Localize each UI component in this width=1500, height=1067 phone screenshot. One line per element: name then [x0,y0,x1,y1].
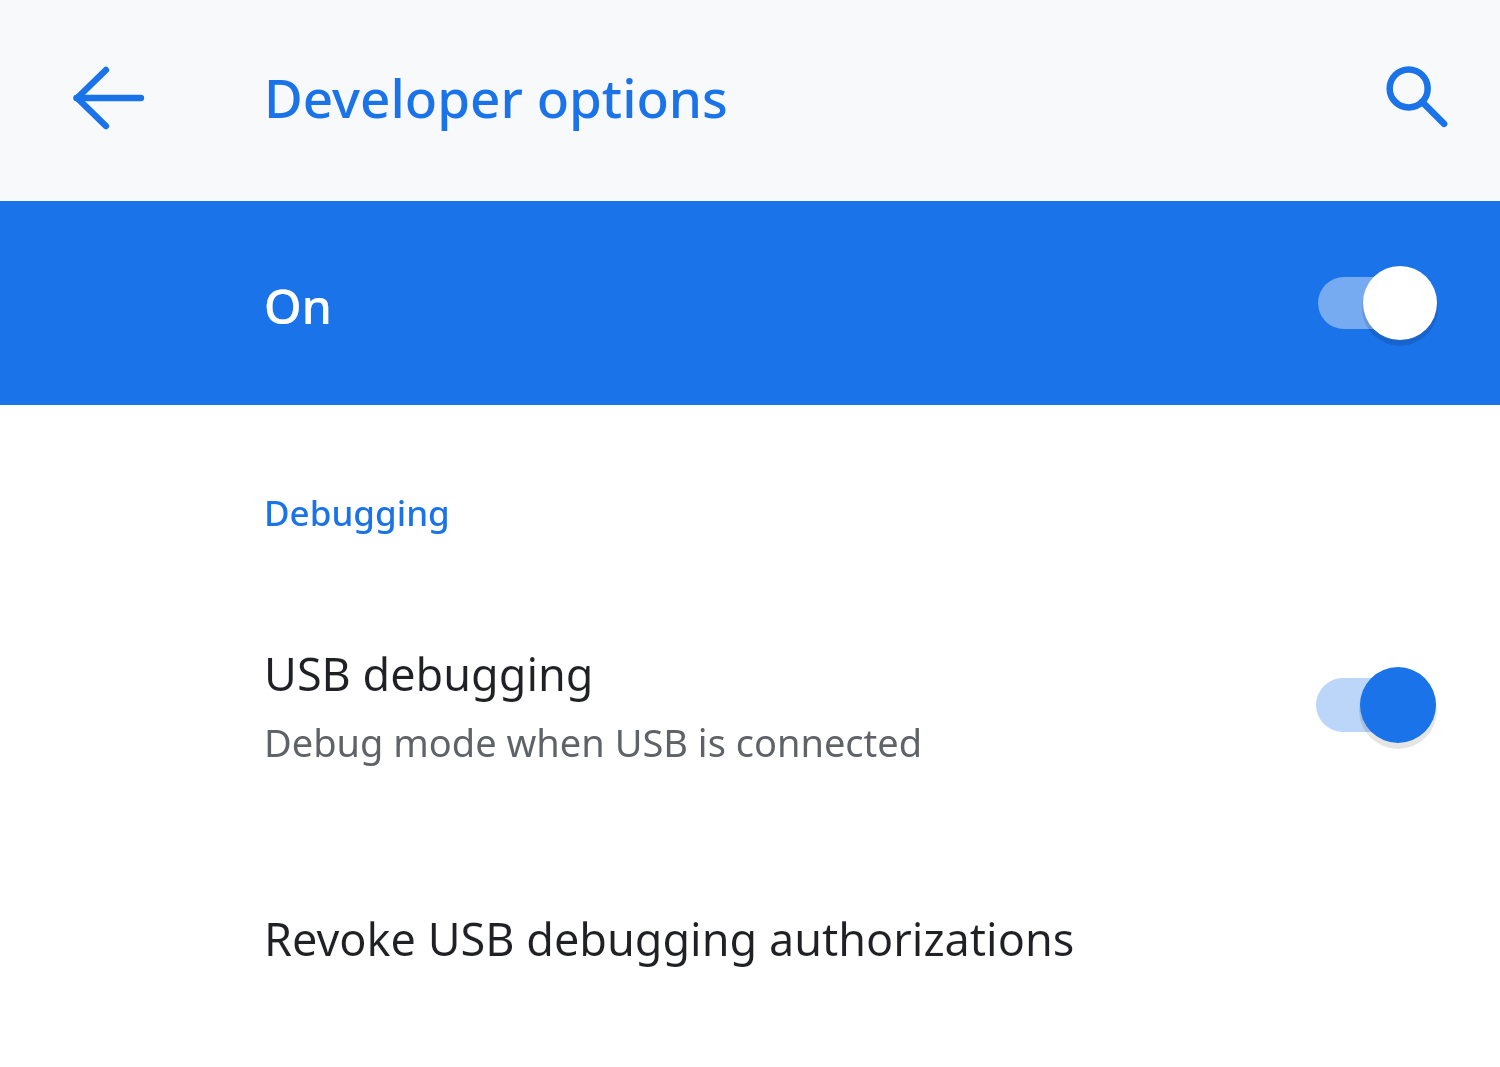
staticText: Debug mode when USB is connected [264,716,923,768]
staticText: Developer options [264,61,728,133]
staticText: On [264,273,332,338]
staticText: USB debugging [264,643,594,704]
staticText: Debugging [264,489,450,537]
button[interactable]: USB debugging toggle [1296,650,1456,760]
button[interactable]: Search [1358,40,1470,152]
staticText: Revoke USB debugging authorizations [264,908,1075,969]
button[interactable]: Revoke USB debugging authorizations [0,860,1500,1015]
button[interactable]: USB debugging [0,620,1500,790]
button[interactable]: On [0,201,1500,405]
button[interactable]: Back [48,38,168,158]
button[interactable]: Developer options on [1298,253,1456,353]
